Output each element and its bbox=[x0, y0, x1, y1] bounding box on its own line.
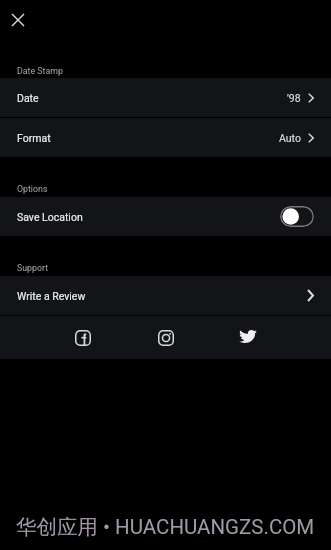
staticText: Support bbox=[17, 263, 49, 273]
button[interactable]: Write a Review bbox=[0, 276, 331, 315]
button[interactable]: Close bbox=[5, 7, 30, 32]
staticText: Write a Review bbox=[17, 290, 86, 302]
button[interactable]: Format bbox=[0, 118, 331, 157]
button[interactable]: Date bbox=[0, 78, 331, 117]
button[interactable]: Twitter bbox=[233, 323, 263, 353]
staticText: Save Location bbox=[17, 211, 83, 223]
button[interactable]: Save Location toggle bbox=[280, 206, 314, 227]
staticText: Date bbox=[17, 92, 39, 104]
staticText: '98 bbox=[287, 92, 301, 104]
staticText: Format bbox=[17, 132, 51, 144]
staticText: Date Stamp bbox=[17, 66, 63, 76]
button[interactable]: Instagram bbox=[151, 323, 181, 353]
staticText: Auto bbox=[279, 132, 301, 144]
button[interactable]: Facebook bbox=[68, 323, 98, 353]
staticText: Options bbox=[17, 184, 48, 194]
staticText: 华创应用 • HUACHUANGZS.COM bbox=[16, 514, 315, 540]
button[interactable]: Save Location bbox=[0, 197, 331, 236]
